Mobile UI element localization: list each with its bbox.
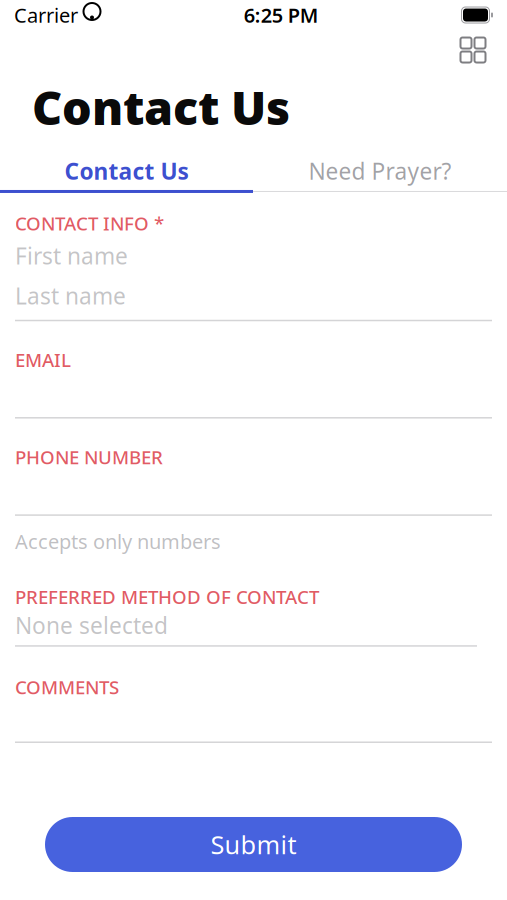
- button[interactable]: Need Prayer?: [253, 152, 507, 190]
- staticText: CONTACT INFO *: [15, 211, 164, 236]
- staticText: PREFERRED METHOD OF CONTACT: [15, 584, 319, 609]
- staticText: Carrier: [14, 2, 78, 28]
- staticText: Contact Us: [32, 76, 290, 138]
- staticText: Need Prayer?: [308, 156, 451, 186]
- staticText: EMAIL: [15, 347, 71, 372]
- button[interactable]: Contact Us: [0, 152, 253, 190]
- staticText: Submit: [210, 828, 296, 861]
- staticText: COMMENTS: [15, 675, 119, 699]
- button[interactable]: Submit: [45, 817, 462, 872]
- button[interactable]: Menu: [451, 30, 495, 70]
- button[interactable]: None selected: [15, 609, 507, 647]
- staticText: Accepts only numbers: [15, 528, 221, 554]
- staticText: First name: [15, 241, 128, 271]
- staticText: Contact Us: [64, 156, 188, 186]
- staticText: 6:25 PM: [244, 2, 319, 28]
- staticText: PHONE NUMBER: [15, 445, 163, 469]
- staticText: None selected: [15, 610, 168, 640]
- staticText: Last name: [15, 281, 126, 311]
